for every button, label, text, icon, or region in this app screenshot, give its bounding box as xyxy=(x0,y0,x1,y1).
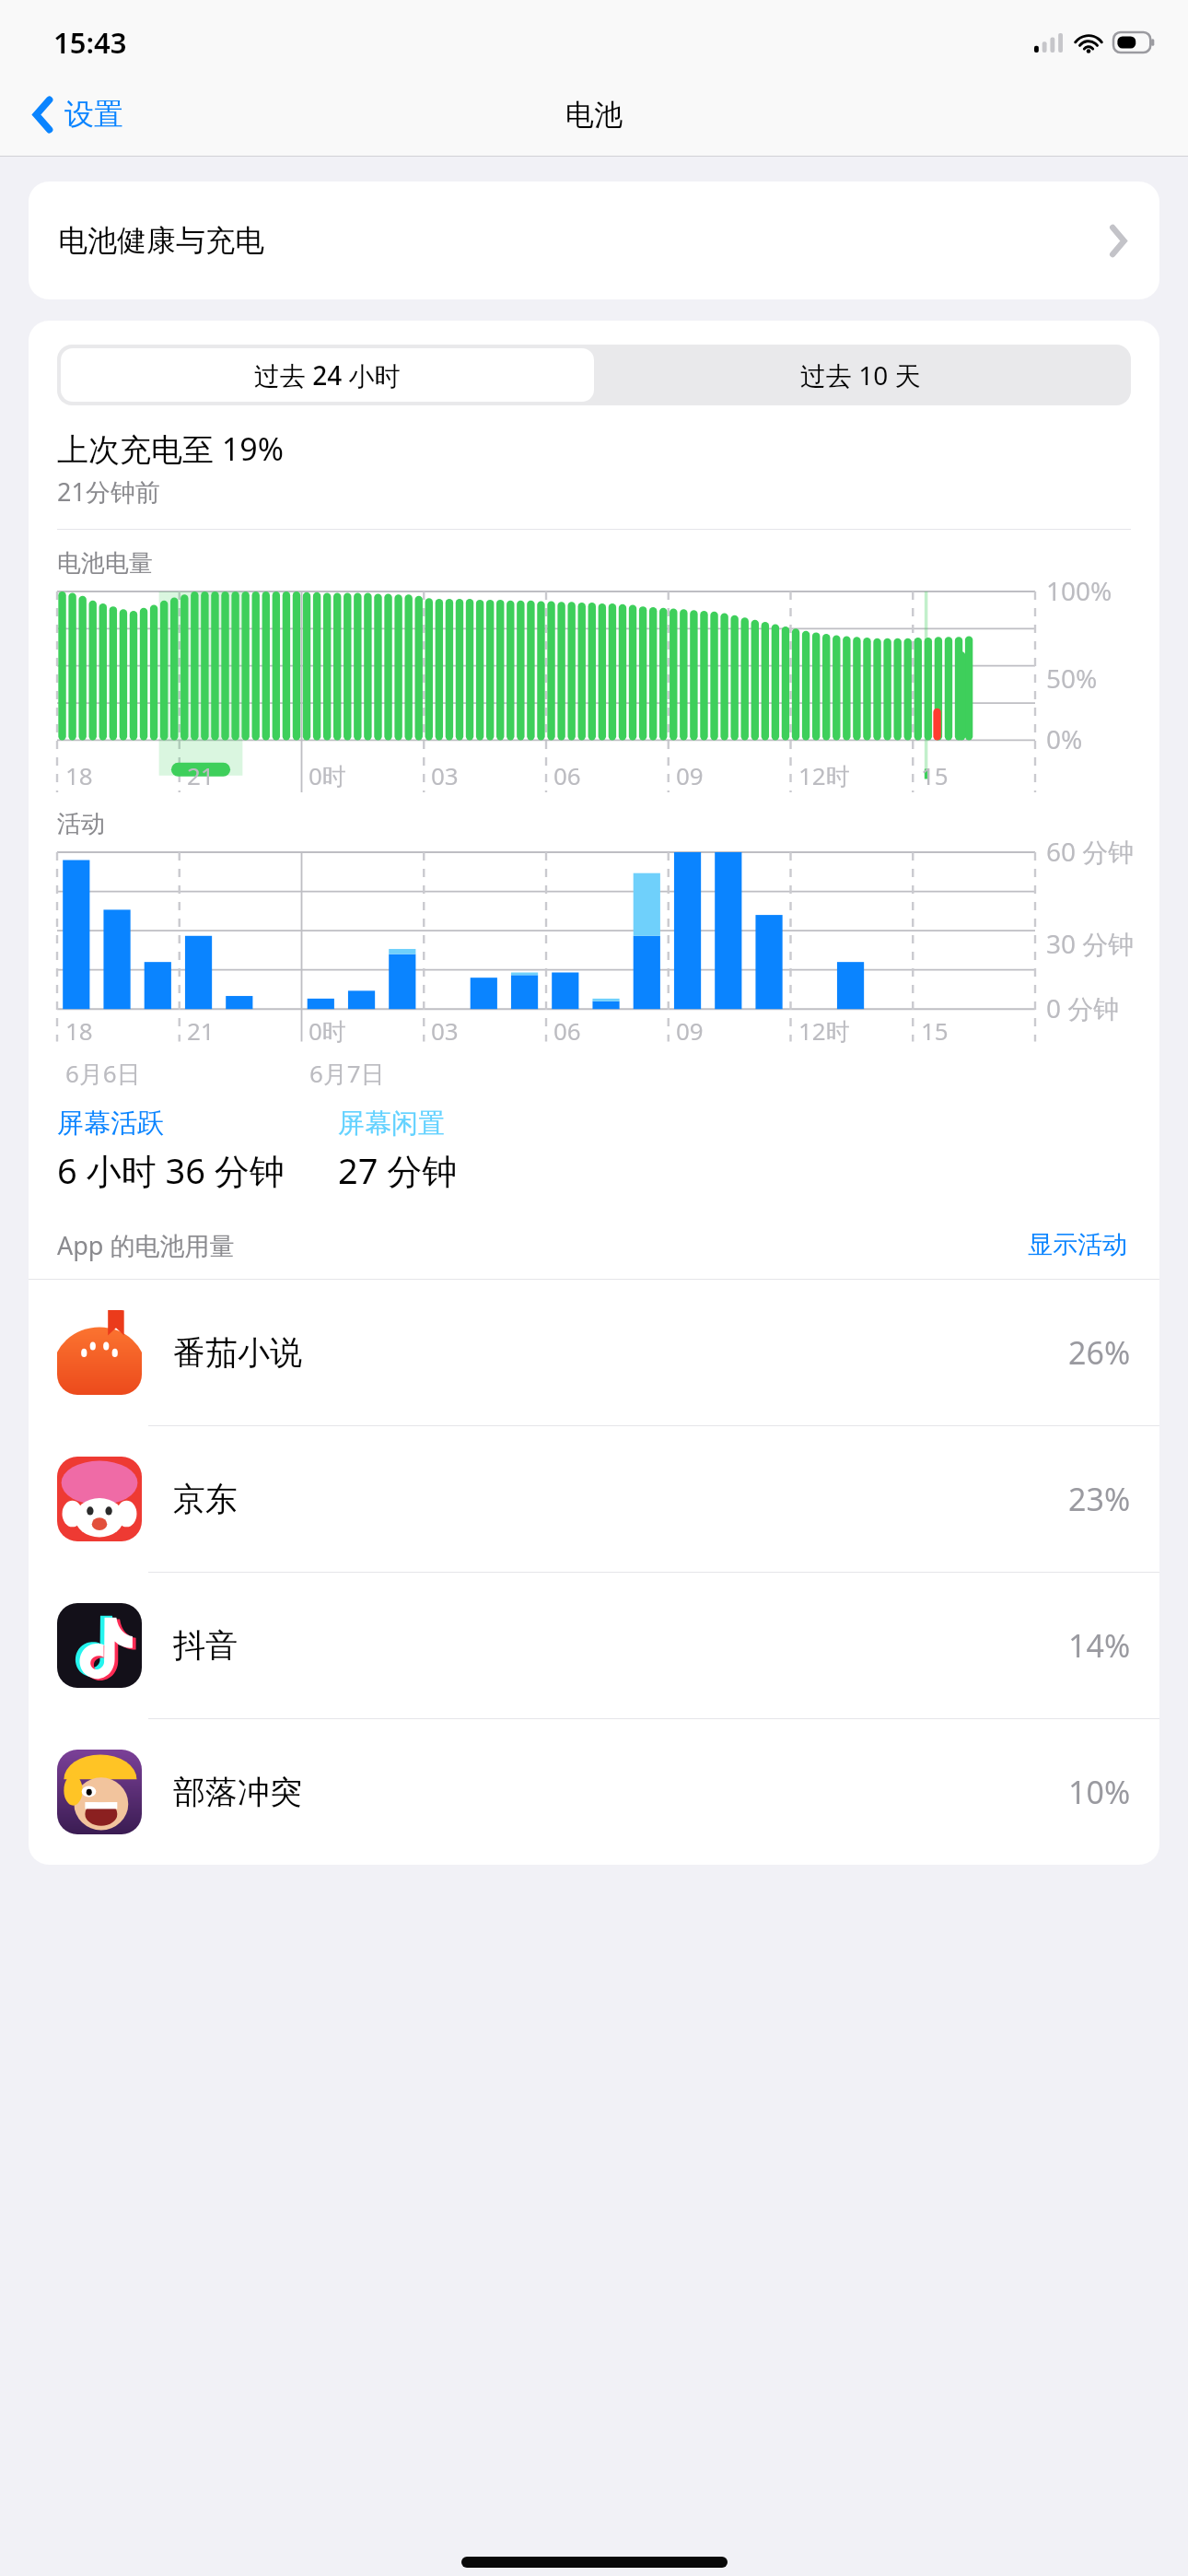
staticText: 15 xyxy=(921,1014,949,1047)
staticText: 电池电量 xyxy=(57,548,153,579)
staticText: 抖音 xyxy=(173,1625,238,1666)
staticText: 15 xyxy=(921,759,949,791)
staticText: 03 xyxy=(431,1014,459,1047)
staticText: 15:43 xyxy=(53,23,127,62)
staticText: 活动 xyxy=(57,809,105,839)
staticText: 09 xyxy=(676,1014,704,1047)
button[interactable]: 过去 24 小时 xyxy=(61,348,594,402)
staticText: 部落冲突 xyxy=(173,1772,302,1812)
staticText: 26% xyxy=(1068,1331,1131,1374)
staticText: 过去 10 天 xyxy=(800,357,921,392)
staticText: 30 分钟 xyxy=(1046,926,1135,961)
staticText: 0 分钟 xyxy=(1046,990,1120,1025)
staticText: 50% xyxy=(1046,661,1098,696)
staticText: 09 xyxy=(676,759,704,791)
staticText: 23% xyxy=(1068,1478,1131,1520)
staticText: App 的电池用量 xyxy=(57,1228,235,1262)
staticText: 6月7日 xyxy=(309,1057,385,1090)
button[interactable]: 抖音 xyxy=(29,1573,1159,1718)
staticText: 06 xyxy=(553,759,581,791)
staticText: 12时 xyxy=(798,759,850,792)
staticText: 18 xyxy=(65,759,93,791)
button[interactable]: 电池健康与充电 xyxy=(29,181,1159,299)
staticText: 电池健康与充电 xyxy=(58,222,264,259)
button[interactable]: 京东 xyxy=(29,1426,1159,1572)
staticText: 设置 xyxy=(64,96,123,133)
button[interactable]: 显示活动 xyxy=(1024,1225,1131,1264)
staticText: 14% xyxy=(1068,1624,1131,1667)
staticText: 电池 xyxy=(565,97,623,133)
staticText: 12时 xyxy=(798,1014,850,1048)
staticText: 03 xyxy=(431,759,459,791)
staticText: 06 xyxy=(553,1014,581,1047)
staticText: 18 xyxy=(65,1014,93,1047)
staticText: 21 xyxy=(187,1014,215,1047)
staticText: 过去 24 小时 xyxy=(254,357,401,392)
staticText: 21分钟前 xyxy=(57,474,160,509)
staticText: 27 分钟 xyxy=(338,1146,458,1194)
other: 电池健康与充电 xyxy=(1110,226,1126,256)
staticText: 屏幕活跃 xyxy=(57,1107,164,1141)
staticText: 显示活动 xyxy=(1028,1229,1127,1260)
staticText: 100% xyxy=(1046,573,1112,608)
button[interactable]: 番茄小说 xyxy=(29,1280,1159,1425)
staticText: 6 小时 36 分钟 xyxy=(57,1146,285,1194)
button[interactable]: 部落冲突 xyxy=(29,1719,1159,1865)
staticText: 21 xyxy=(187,759,215,791)
button[interactable]: 设置 xyxy=(26,88,131,140)
staticText: 6月6日 xyxy=(65,1057,141,1090)
staticText: 10% xyxy=(1068,1771,1131,1813)
staticText: 0% xyxy=(1046,721,1083,756)
staticText: 番茄小说 xyxy=(173,1332,302,1373)
staticText: 60 分钟 xyxy=(1046,834,1135,869)
staticText: 上次充电至 19% xyxy=(57,427,284,470)
button[interactable]: 过去 10 天 xyxy=(594,348,1127,402)
staticText: 屏幕闲置 xyxy=(338,1107,445,1141)
staticText: 京东 xyxy=(173,1479,238,1519)
staticText: 0时 xyxy=(309,1014,346,1048)
staticText: 0时 xyxy=(309,759,346,792)
